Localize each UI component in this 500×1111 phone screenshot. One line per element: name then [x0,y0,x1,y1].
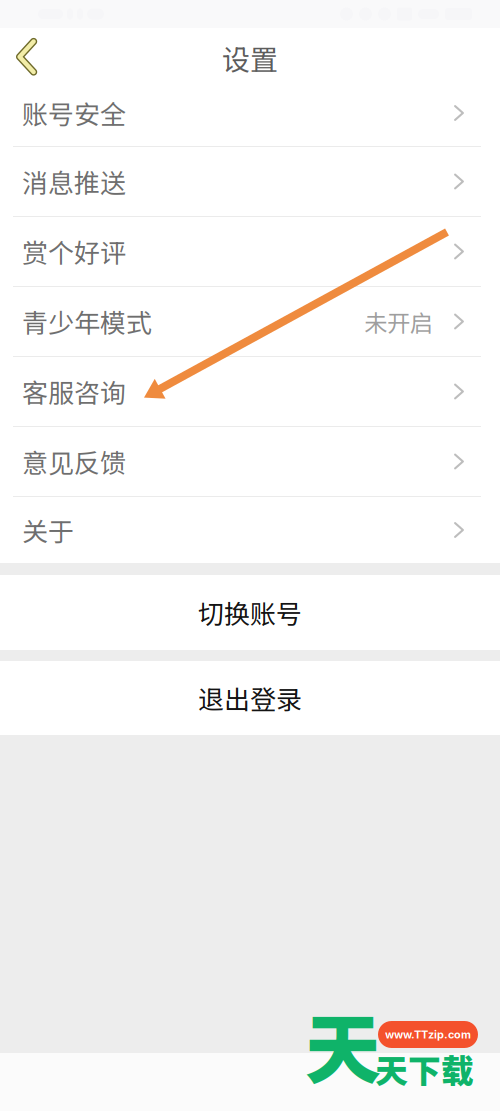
staticText: 退出登录 [198,679,302,717]
button[interactable]: Back [0,28,53,80]
button[interactable]: 青少年模式 [0,287,500,356]
button[interactable]: 退出登录 [0,661,500,735]
staticText: 切换账号 [198,594,302,631]
button[interactable]: 关于 [0,497,500,563]
button[interactable]: 切换账号 [0,575,500,650]
staticText: 天 [305,989,381,1099]
staticText: 客服咨询 [22,373,126,410]
staticText: 关于 [22,511,74,549]
staticText: 未开启 [364,305,433,338]
staticText: 意见反馈 [22,443,126,480]
button[interactable]: 客服咨询 [0,357,500,426]
staticText: www.TTzip.com [385,1028,471,1041]
staticText: 消息推送 [22,163,126,200]
staticText: 设置 [222,38,278,78]
button[interactable]: 账号安全 [0,80,500,146]
staticText: 账号安全 [22,94,126,132]
button[interactable]: 消息推送 [0,147,500,216]
staticText: 青少年模式 [22,303,152,340]
staticText: 天下载 [375,1045,474,1092]
button[interactable]: 赏个好评 [0,217,500,286]
staticText: 赏个好评 [22,233,126,270]
button[interactable]: 意见反馈 [0,427,500,496]
